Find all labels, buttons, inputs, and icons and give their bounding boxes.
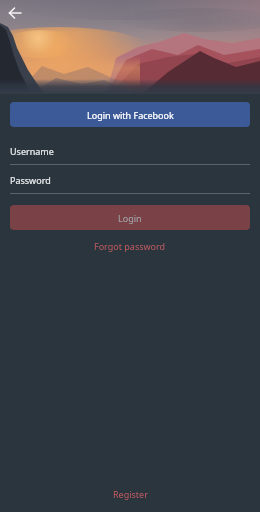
staticText: Password [10,174,51,186]
staticText: Login [118,212,142,224]
staticText: Username [10,145,54,157]
button[interactable] [5,3,25,23]
staticText: Forgot password [94,240,166,252]
button[interactable]: Forgot password [90,240,170,252]
button[interactable]: Password [10,174,250,194]
staticText: Register [113,488,148,500]
button[interactable]: Login with Facebook [10,102,250,127]
button[interactable]: Register [109,488,152,500]
button[interactable]: Username [10,145,250,165]
staticText: Login with Facebook [87,109,174,121]
button[interactable]: Login [10,205,250,230]
